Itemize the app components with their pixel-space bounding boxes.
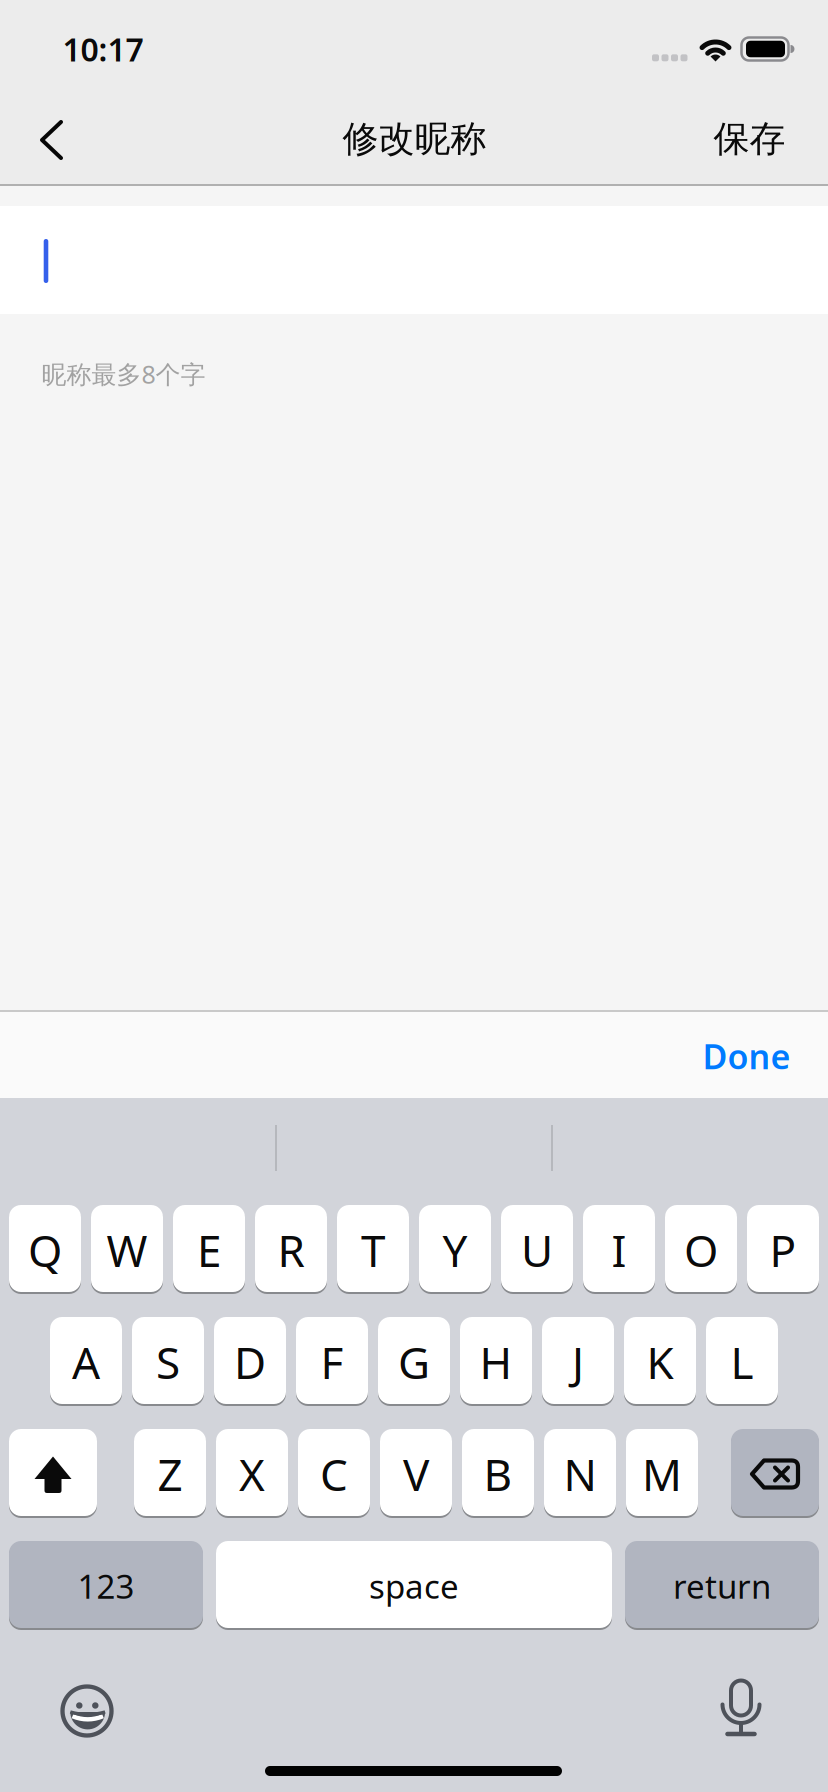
button[interactable]: S bbox=[132, 1317, 204, 1404]
button[interactable]: 输入昵称 bbox=[0, 206, 828, 314]
button[interactable]: 听写 bbox=[713, 1669, 769, 1745]
staticText: 保存 bbox=[713, 116, 785, 162]
button[interactable]: return bbox=[625, 1541, 819, 1628]
button[interactable]: V bbox=[380, 1429, 452, 1516]
staticText: C bbox=[320, 1444, 348, 1504]
button[interactable]: J bbox=[542, 1317, 614, 1404]
button[interactable]: A bbox=[50, 1317, 122, 1404]
staticText: D bbox=[234, 1332, 266, 1392]
button[interactable]: M bbox=[626, 1429, 698, 1516]
button[interactable]: 保存 bbox=[713, 116, 785, 162]
button[interactable]: O bbox=[665, 1205, 737, 1292]
button[interactable]: E bbox=[173, 1205, 245, 1292]
staticText: O bbox=[684, 1220, 718, 1280]
staticText: space bbox=[369, 1563, 459, 1608]
staticText: M bbox=[642, 1444, 682, 1504]
staticText: return bbox=[673, 1563, 771, 1608]
staticText: P bbox=[769, 1220, 796, 1280]
staticText: Done bbox=[702, 1033, 790, 1079]
staticText: F bbox=[320, 1332, 343, 1392]
button[interactable]: Q bbox=[9, 1205, 81, 1292]
staticText: Y bbox=[442, 1220, 467, 1280]
staticText: G bbox=[398, 1332, 430, 1392]
button[interactable]: H bbox=[460, 1317, 532, 1404]
staticText: T bbox=[361, 1220, 385, 1280]
button[interactable]: Y bbox=[419, 1205, 491, 1292]
button[interactable]: Done bbox=[702, 1033, 790, 1079]
staticText: 修改昵称 bbox=[342, 116, 486, 162]
button[interactable]: T bbox=[337, 1205, 409, 1292]
button[interactable]: K bbox=[624, 1317, 696, 1404]
button[interactable]: G bbox=[378, 1317, 450, 1404]
staticText: H bbox=[479, 1332, 512, 1392]
staticText: E bbox=[197, 1220, 221, 1280]
staticText: Z bbox=[157, 1444, 182, 1504]
button[interactable]: B bbox=[462, 1429, 534, 1516]
button[interactable]: Delete bbox=[731, 1429, 819, 1516]
button[interactable]: Emoji bbox=[55, 1679, 119, 1743]
button[interactable]: D bbox=[214, 1317, 286, 1404]
button[interactable]: W bbox=[91, 1205, 163, 1292]
button[interactable]: P bbox=[747, 1205, 819, 1292]
staticText: V bbox=[403, 1444, 429, 1504]
button[interactable]: U bbox=[501, 1205, 573, 1292]
button[interactable]: N bbox=[544, 1429, 616, 1516]
staticText: K bbox=[646, 1332, 673, 1392]
staticText: U bbox=[521, 1220, 553, 1280]
staticText: 10:17 bbox=[62, 27, 143, 71]
button[interactable]: 123 bbox=[9, 1541, 203, 1628]
staticText: B bbox=[483, 1444, 512, 1504]
button[interactable]: Shift bbox=[9, 1429, 97, 1516]
button[interactable]: I bbox=[583, 1205, 655, 1292]
button[interactable]: L bbox=[706, 1317, 778, 1404]
staticText: I bbox=[611, 1220, 626, 1280]
staticText: N bbox=[563, 1444, 596, 1504]
staticText: S bbox=[156, 1332, 180, 1392]
button[interactable]: F bbox=[296, 1317, 368, 1404]
button[interactable]: X bbox=[216, 1429, 288, 1516]
staticText: 昵称最多8个字 bbox=[41, 357, 205, 391]
staticText: R bbox=[277, 1220, 304, 1280]
staticText: W bbox=[106, 1220, 147, 1280]
button[interactable]: R bbox=[255, 1205, 327, 1292]
staticText: 123 bbox=[77, 1563, 134, 1608]
staticText: J bbox=[572, 1332, 584, 1392]
staticText: X bbox=[239, 1444, 265, 1504]
staticText: Q bbox=[28, 1220, 62, 1280]
button[interactable]: Z bbox=[134, 1429, 206, 1516]
staticText: L bbox=[730, 1332, 753, 1392]
staticText: A bbox=[72, 1332, 100, 1392]
button[interactable]: C bbox=[298, 1429, 370, 1516]
button[interactable]: space bbox=[216, 1541, 612, 1628]
button[interactable]: 返回 bbox=[27, 110, 77, 170]
